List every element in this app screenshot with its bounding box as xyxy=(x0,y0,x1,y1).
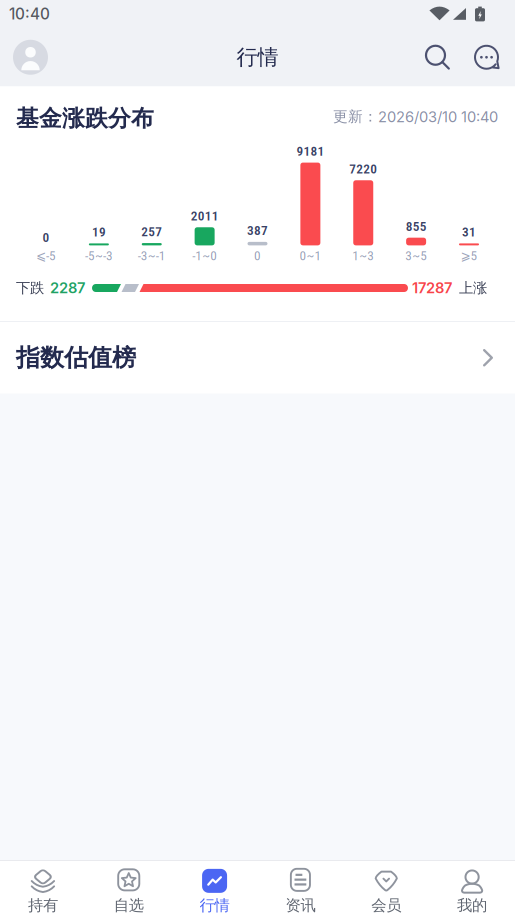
staticText: 17287 xyxy=(412,279,452,297)
staticText: 9181 xyxy=(296,143,324,159)
staticText: 下跌 xyxy=(16,279,44,297)
button[interactable]: 我的 xyxy=(429,861,515,921)
staticText: -1~0 xyxy=(192,248,217,263)
button[interactable] xyxy=(450,45,515,70)
staticText: 行情 xyxy=(236,44,278,70)
staticText: ⩾5 xyxy=(460,248,477,263)
staticText: 自选 xyxy=(114,896,144,915)
staticText: 10:40 xyxy=(9,5,50,23)
button[interactable]: 行情 xyxy=(172,861,257,921)
staticText: -3~-1 xyxy=(138,248,166,263)
staticText: 855 xyxy=(406,219,427,234)
staticText: 行情 xyxy=(200,896,230,915)
staticText: 会员 xyxy=(371,896,401,915)
staticText: 387 xyxy=(247,223,268,238)
staticText: 7220 xyxy=(349,161,377,177)
staticText: 持有 xyxy=(28,896,58,915)
staticText: 指数估值榜 xyxy=(16,343,136,373)
staticText: 更新：2026/03/10 10:40 xyxy=(333,107,498,126)
staticText: 3~5 xyxy=(405,248,427,263)
staticText: ⩽-5 xyxy=(36,248,56,263)
staticText: 1~3 xyxy=(352,248,374,263)
button[interactable] xyxy=(0,40,48,75)
staticText: -5~-3 xyxy=(85,248,113,263)
staticText: 19 xyxy=(92,224,106,240)
button[interactable]: 持有 xyxy=(0,861,86,921)
staticText: 资讯 xyxy=(285,896,315,915)
staticText: 2011 xyxy=(191,208,219,224)
staticText: 基金涨跌分布 xyxy=(16,104,154,133)
staticText: 0 xyxy=(254,248,261,263)
button[interactable]: 资讯 xyxy=(257,861,343,921)
staticText: 257 xyxy=(141,224,162,240)
staticText: 我的 xyxy=(457,896,487,915)
button[interactable]: 指数估值榜 xyxy=(0,322,515,393)
staticText: 上涨 xyxy=(459,279,487,297)
button[interactable] xyxy=(424,44,450,71)
button[interactable]: 会员 xyxy=(343,861,429,921)
staticText: 31 xyxy=(462,224,476,240)
button[interactable]: 自选 xyxy=(86,861,172,921)
staticText: 2287 xyxy=(50,279,85,297)
staticText: 0 xyxy=(42,230,49,245)
staticText: 0~1 xyxy=(299,248,321,263)
